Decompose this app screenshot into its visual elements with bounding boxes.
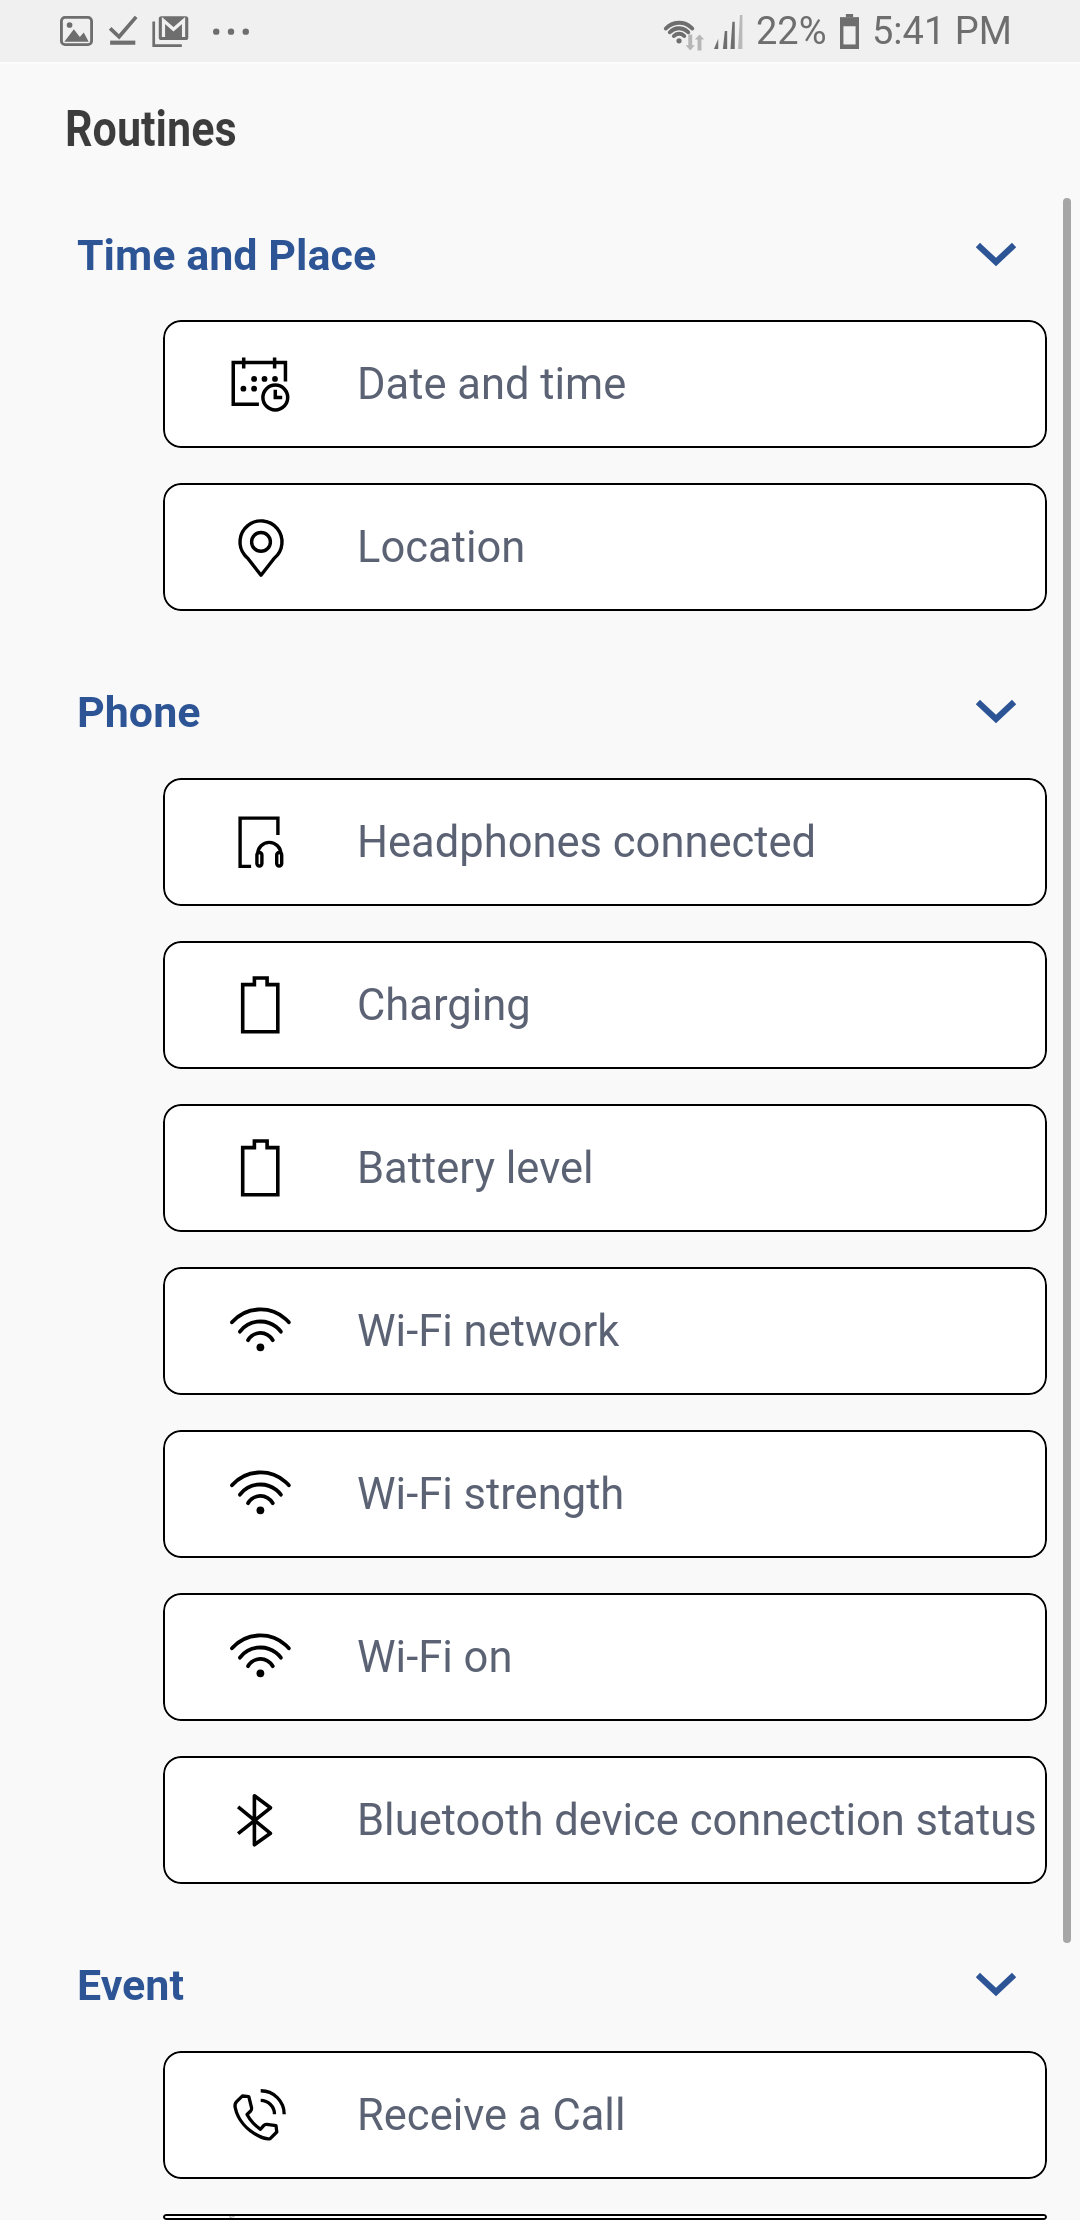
button[interactable]: Battery level bbox=[163, 1104, 1047, 1232]
staticText: Text message bbox=[357, 2214, 628, 2220]
staticText: Charging bbox=[357, 980, 531, 1031]
button[interactable]: Text message bbox=[163, 2214, 1047, 2220]
staticText: Headphones connected bbox=[357, 817, 817, 868]
other: Collapse Time and Place bbox=[978, 245, 1014, 265]
button[interactable]: Time and Place bbox=[0, 222, 1080, 288]
button[interactable]: Event bbox=[0, 1952, 1080, 2018]
staticText: 22% bbox=[756, 9, 827, 54]
staticText: Wi-Fi strength bbox=[357, 1469, 625, 1520]
staticText: 5:41 PM bbox=[872, 9, 1012, 54]
button[interactable]: Charging bbox=[163, 941, 1047, 1069]
staticText: Date and time bbox=[357, 359, 627, 410]
button[interactable]: Receive a Call bbox=[163, 2051, 1047, 2179]
staticText: Phone bbox=[77, 687, 201, 737]
button[interactable]: Date and time bbox=[163, 320, 1047, 448]
other: Collapse Phone bbox=[978, 702, 1014, 722]
staticText: Receive a Call bbox=[357, 2090, 626, 2141]
staticText: Wi-Fi on bbox=[357, 1632, 513, 1683]
staticText: Bluetooth device connection status bbox=[357, 1795, 1037, 1846]
staticText: Event bbox=[77, 1960, 184, 2010]
other: Collapse Event bbox=[978, 1975, 1014, 1995]
button[interactable]: Bluetooth device connection status bbox=[163, 1756, 1047, 1884]
button[interactable]: Wi-Fi network bbox=[163, 1267, 1047, 1395]
staticText: Battery level bbox=[357, 1143, 594, 1194]
button[interactable]: Headphones connected bbox=[163, 778, 1047, 906]
staticText: Time and Place bbox=[77, 230, 377, 280]
button[interactable]: Phone bbox=[0, 679, 1080, 745]
button[interactable]: Location bbox=[163, 483, 1047, 611]
staticText: Wi-Fi network bbox=[357, 1306, 620, 1357]
staticText: Routines bbox=[65, 100, 237, 159]
button[interactable]: Wi-Fi on bbox=[163, 1593, 1047, 1721]
staticText: Location bbox=[357, 522, 526, 573]
button[interactable]: Wi-Fi strength bbox=[163, 1430, 1047, 1558]
